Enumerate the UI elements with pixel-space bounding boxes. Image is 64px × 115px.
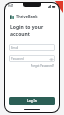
staticText: Email	[11, 46, 19, 50]
staticText: Log In	[27, 99, 37, 103]
button[interactable]: Show password	[49, 57, 53, 61]
button[interactable]: Password	[9, 55, 55, 62]
button[interactable]: Log In	[9, 97, 55, 105]
staticText: Login to your account	[10, 24, 59, 38]
staticText: Password	[11, 57, 24, 61]
staticText: ThriveBank	[16, 14, 38, 19]
staticText: Forgot Password?	[30, 64, 54, 68]
button[interactable]: Forgot Password?	[29, 63, 55, 69]
button[interactable]: Email	[9, 44, 55, 51]
staticText: 9:41	[8, 4, 14, 8]
